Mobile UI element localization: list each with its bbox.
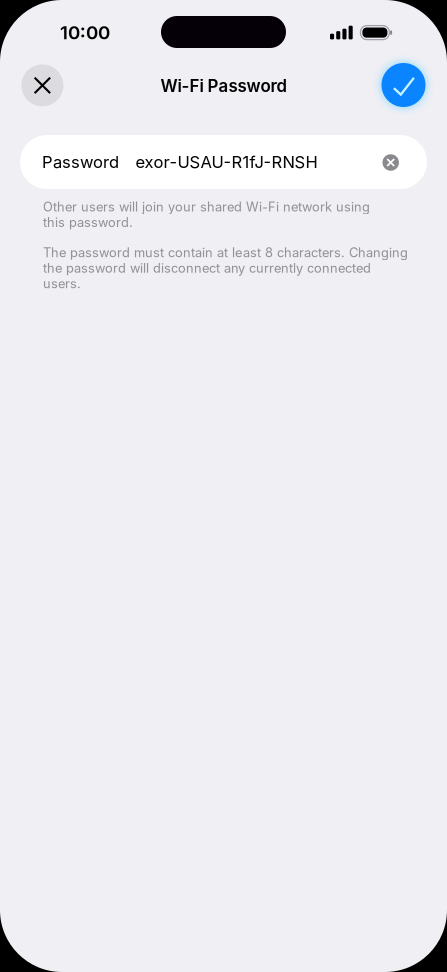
staticText: Wi-Fi Password — [160, 76, 286, 96]
button[interactable]: Save — [381, 63, 425, 107]
button[interactable]: Close — [21, 64, 63, 106]
staticText: 10:00 — [60, 21, 110, 44]
button[interactable]: Clear password — [372, 140, 410, 184]
staticText: Other users will join your shared Wi-Fi … — [43, 199, 370, 230]
staticText: exor-USAU-R1fJ-RNSH — [135, 152, 317, 172]
staticText: The password must contain at least 8 cha… — [43, 245, 408, 291]
staticText: Password — [42, 152, 119, 172]
